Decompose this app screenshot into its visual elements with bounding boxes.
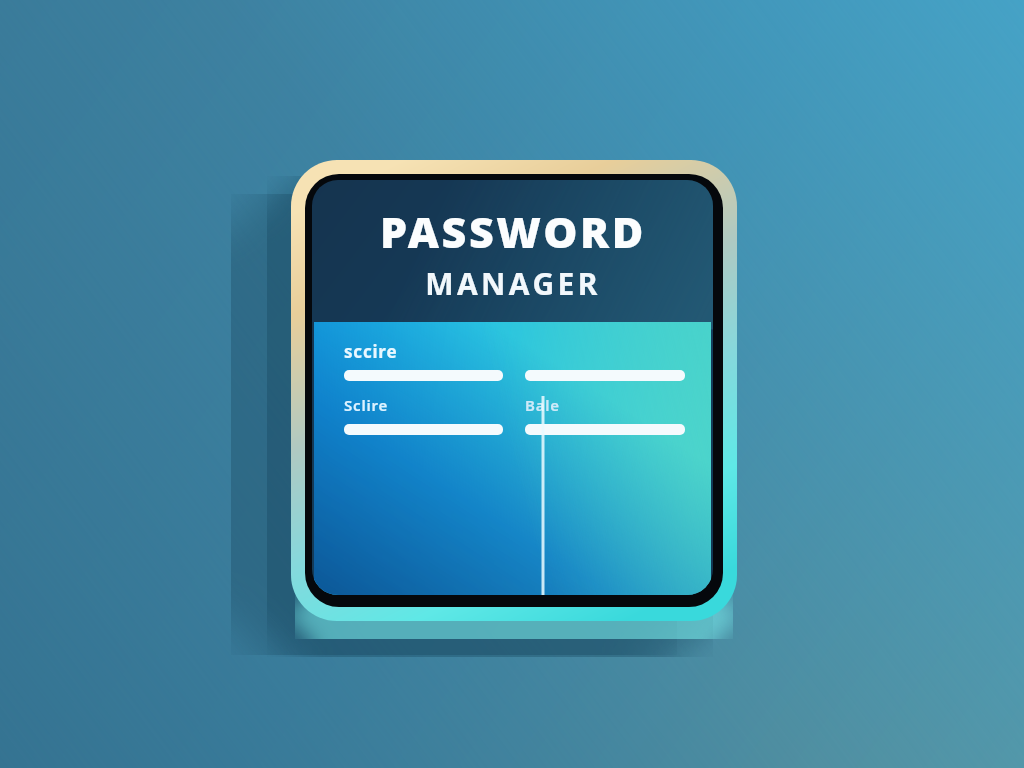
staticText: Sclire: [344, 395, 389, 415]
staticText: PASSWORD: [380, 202, 646, 261]
button[interactable]: Text field: [344, 370, 503, 381]
staticText: sccire: [344, 340, 398, 363]
button[interactable]: Text field: [525, 424, 685, 435]
button[interactable]: Text field: [344, 424, 503, 435]
staticText: Bale: [525, 395, 560, 415]
button[interactable]: Text field: [525, 370, 685, 381]
staticText: MANAGER: [425, 263, 601, 304]
